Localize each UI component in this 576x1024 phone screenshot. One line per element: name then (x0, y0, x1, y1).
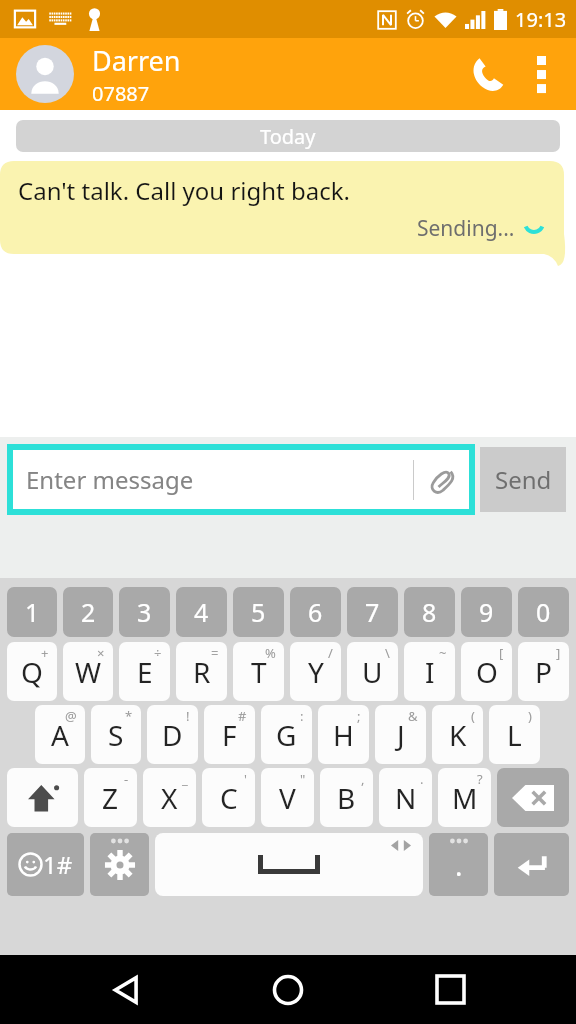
staticText: H (333, 716, 354, 754)
staticText: K (449, 716, 467, 754)
staticText: T (251, 653, 267, 691)
button[interactable]: More options (516, 49, 566, 99)
button[interactable]: H (318, 705, 369, 764)
staticText: I (425, 653, 435, 691)
staticText: ÷ (154, 644, 162, 662)
button[interactable]: Z (84, 768, 137, 827)
staticText: " (300, 770, 306, 788)
button[interactable]: N (379, 768, 432, 827)
staticText: 2 (81, 595, 96, 629)
button[interactable]: Keyboard settings (90, 833, 149, 896)
button[interactable]: R (176, 642, 227, 701)
staticText: J (397, 716, 405, 754)
button[interactable]: . (429, 833, 488, 896)
staticText: ~ (439, 644, 447, 662)
staticText: P (535, 653, 552, 691)
button[interactable]: B (320, 768, 373, 827)
staticText: Can't talk. Call you right back. (18, 174, 351, 207)
button[interactable]: 7 (347, 587, 398, 637)
staticText: Y (308, 653, 324, 691)
staticText: ] (556, 644, 561, 662)
button[interactable]: G (261, 705, 312, 764)
staticText: 4 (194, 595, 209, 629)
staticText: G (276, 716, 297, 754)
staticText: = (211, 644, 219, 662)
staticText: Darren (92, 42, 181, 79)
button[interactable]: W (63, 642, 113, 701)
button[interactable]: Recent apps (414, 955, 486, 1024)
button[interactable]: T (233, 642, 284, 701)
button[interactable]: Enter (494, 833, 569, 896)
button[interactable]: Can't talk. Call you right back. (0, 161, 564, 254)
staticText: [ (499, 644, 504, 662)
button[interactable]: C (202, 768, 255, 827)
button[interactable]: 4 (176, 587, 227, 637)
staticText: ? (477, 770, 483, 788)
button[interactable]: V (261, 768, 314, 827)
staticText: Sending... (417, 214, 515, 243)
staticText: % (265, 644, 276, 662)
button[interactable]: E (119, 642, 170, 701)
button[interactable]: 8 (404, 587, 455, 637)
staticText: C (220, 779, 238, 817)
button[interactable]: 2 (63, 587, 113, 637)
button[interactable]: 0 (518, 587, 569, 637)
staticText: Send (495, 463, 552, 496)
button[interactable]: Home (252, 955, 324, 1024)
button[interactable]: 6 (290, 587, 341, 637)
button[interactable]: Space (155, 833, 423, 896)
staticText: 3 (137, 595, 152, 629)
button[interactable]: 3 (119, 587, 170, 637)
button[interactable]: F (204, 705, 255, 764)
button[interactable]: Shift (7, 768, 78, 827)
button[interactable]: 1 (7, 587, 57, 637)
staticText: × (97, 644, 105, 662)
button[interactable]: Q (7, 642, 57, 701)
staticText: 7 (365, 595, 380, 629)
button[interactable]: Enter message (10, 447, 472, 512)
staticText: A (51, 716, 69, 754)
button[interactable]: U (347, 642, 398, 701)
staticText: _ (182, 770, 188, 788)
button[interactable]: X (143, 768, 196, 827)
staticText: ! (186, 707, 190, 725)
staticText: R (193, 653, 211, 691)
staticText: @ (65, 707, 77, 725)
button[interactable]: P (518, 642, 569, 701)
staticText: L (507, 716, 522, 754)
button[interactable]: D (147, 705, 198, 764)
staticText: U (362, 653, 383, 691)
staticText: N (395, 779, 417, 817)
staticText: 5 (251, 595, 266, 629)
button[interactable]: O (461, 642, 512, 701)
staticText: V (279, 779, 296, 817)
button[interactable]: Y (290, 642, 341, 701)
staticText: * (125, 707, 133, 725)
button[interactable]: L (489, 705, 540, 764)
button[interactable]: 9 (461, 587, 512, 637)
button[interactable]: Symbols and emoji (7, 833, 84, 896)
button[interactable]: Back (90, 955, 162, 1024)
button[interactable]: S (91, 705, 141, 764)
staticText: F (222, 716, 237, 754)
staticText: S (108, 716, 124, 754)
button[interactable]: Today (16, 120, 560, 152)
button[interactable]: Call (456, 44, 516, 104)
staticText: 9 (479, 595, 494, 629)
button[interactable]: Backspace (497, 768, 569, 827)
button[interactable]: Contact photo (16, 45, 74, 103)
staticText: \ (385, 644, 390, 662)
button[interactable]: J (375, 705, 426, 764)
button[interactable]: M (438, 768, 491, 827)
button[interactable]: Send (480, 447, 566, 512)
button[interactable]: K (432, 705, 483, 764)
staticText: , (361, 770, 365, 788)
button[interactable]: I (404, 642, 455, 701)
staticText: 19:13 (515, 6, 567, 33)
button[interactable]: 5 (233, 587, 284, 637)
staticText: Today (260, 123, 316, 150)
button[interactable]: Attach file (414, 447, 472, 512)
button[interactable]: A (35, 705, 85, 764)
staticText: W (75, 653, 102, 691)
staticText: ' (244, 770, 247, 788)
